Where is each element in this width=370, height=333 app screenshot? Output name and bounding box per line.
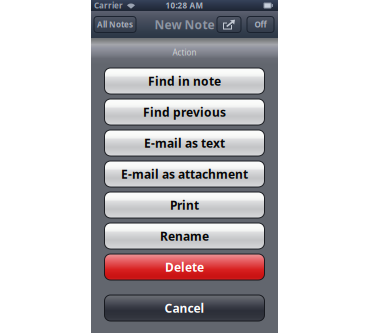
staticText: Rename [160, 228, 209, 244]
button[interactable]: E-mail as attachment [104, 161, 264, 187]
button[interactable]: Off [247, 16, 274, 32]
button[interactable]: Find previous [104, 99, 264, 125]
staticText: Carrier [94, 0, 123, 11]
staticText: 10:28 AM [165, 0, 203, 11]
staticText: E-mail as text [144, 135, 225, 151]
staticText: All Notes [97, 19, 133, 30]
staticText: Cancel [164, 300, 204, 316]
staticText: Action [172, 47, 196, 58]
button[interactable]: All Notes [94, 16, 136, 32]
button[interactable]: Rename [104, 223, 264, 249]
staticText: E-mail as attachment [121, 166, 248, 182]
button[interactable]: E-mail as text [104, 130, 264, 156]
staticText: Find previous [143, 104, 226, 120]
staticText: New Note [154, 16, 214, 32]
button[interactable]: Find in note [104, 68, 264, 94]
button[interactable]: Print [104, 192, 264, 218]
button[interactable]: Cancel [104, 295, 264, 321]
button[interactable]: Delete [104, 254, 264, 280]
staticText: Print [170, 197, 199, 213]
staticText: Delete [165, 259, 204, 275]
button[interactable]: Share [217, 16, 241, 32]
staticText: Off [254, 19, 266, 30]
staticText: Find in note [148, 73, 221, 89]
